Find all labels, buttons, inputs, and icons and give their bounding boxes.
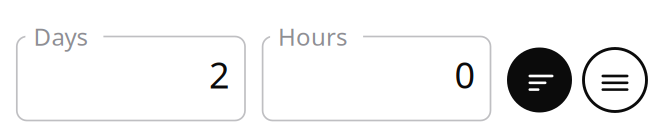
staticText: Hours bbox=[278, 21, 347, 52]
button[interactable]: Menu bbox=[582, 47, 647, 112]
staticText: 2 bbox=[209, 51, 230, 98]
staticText: 0 bbox=[454, 51, 475, 98]
button[interactable]: Sort bbox=[507, 47, 572, 112]
staticText: Days bbox=[33, 21, 87, 52]
